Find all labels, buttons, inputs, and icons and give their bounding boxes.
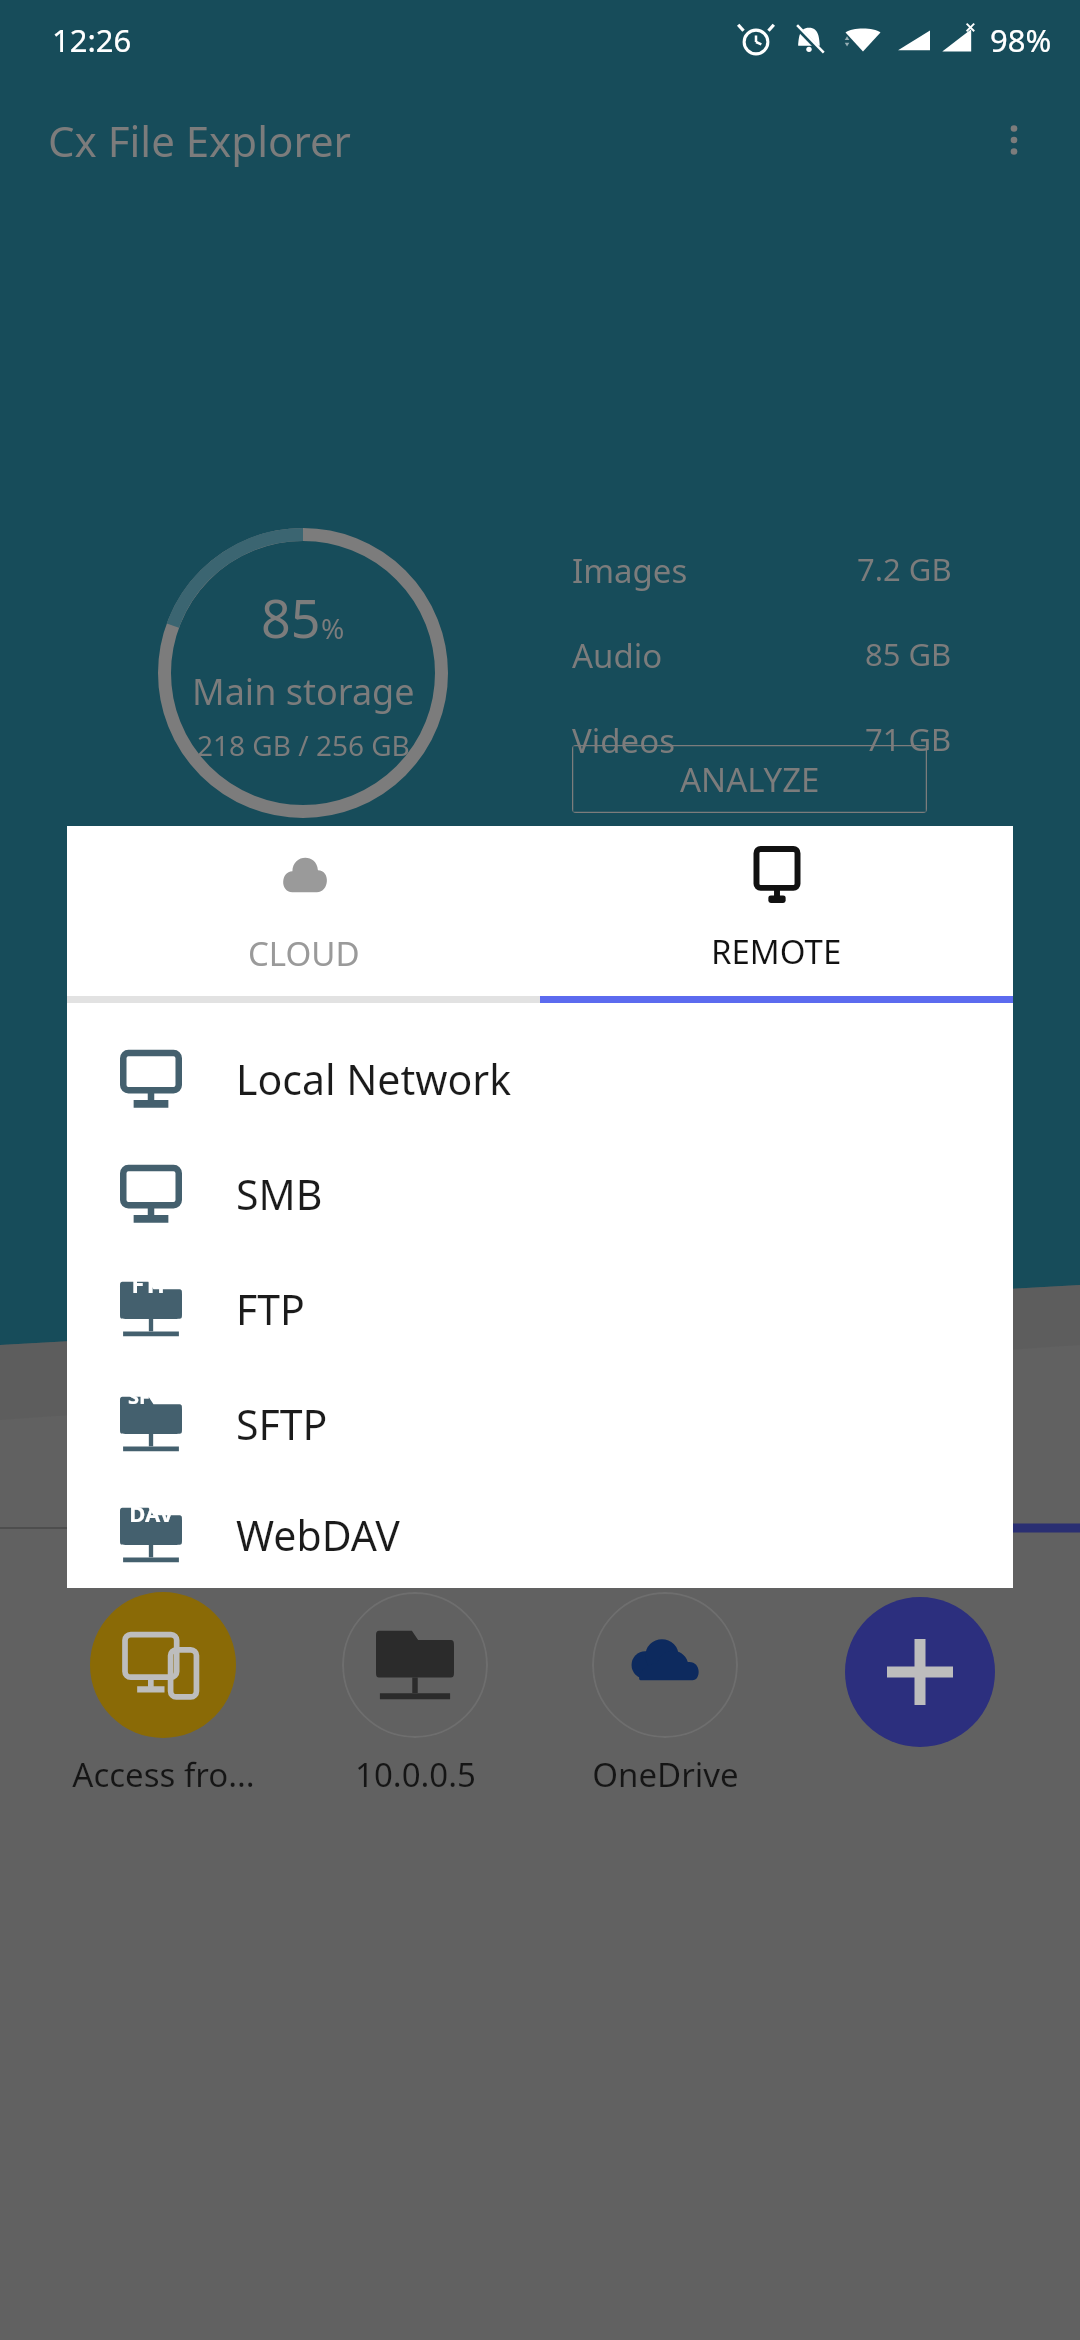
staticText: 10.0.0.5 — [355, 1752, 476, 1797]
staticText: Videos — [572, 718, 675, 763]
button[interactable]: SFTP — [67, 1366, 1013, 1481]
staticText: 85 — [261, 582, 321, 653]
button[interactable]: OneDrive — [560, 1592, 770, 1797]
staticText: Main storage — [192, 667, 415, 716]
staticText: ANALYZE — [680, 757, 820, 802]
button[interactable]: CLOUD — [67, 826, 540, 996]
staticText: % — [321, 609, 345, 647]
staticText: Images — [572, 548, 688, 593]
staticText: CLOUD — [248, 931, 360, 976]
staticText: SMB — [236, 1166, 323, 1222]
button[interactable]: More options — [972, 98, 1056, 182]
staticText: Audio — [572, 633, 663, 678]
staticText: 85 GB — [865, 633, 952, 675]
staticText: 218 GB / 256 GB — [197, 726, 410, 764]
staticText: 7.2 GB — [857, 548, 952, 590]
staticText: FTP — [236, 1281, 305, 1337]
button[interactable]: ANALYZE — [572, 745, 927, 813]
staticText: Local Network — [236, 1051, 512, 1107]
staticText: 71 GB — [865, 718, 952, 760]
button[interactable]: Add — [845, 1597, 995, 1747]
staticText: Cx File Explorer — [48, 112, 351, 169]
button[interactable]: FTP — [67, 1251, 1013, 1366]
staticText: 12:26 — [52, 19, 132, 61]
button[interactable]: SMB — [67, 1136, 1013, 1251]
button[interactable]: SFTP 10.0.0.5 — [310, 1592, 520, 1797]
staticText: WebDAV — [236, 1507, 400, 1563]
staticText: 98% — [990, 19, 1052, 61]
staticText: Access fro... — [72, 1752, 255, 1797]
staticText: FTP — [131, 1268, 172, 1299]
staticText: DAV — [129, 1498, 174, 1528]
staticText: OneDrive — [592, 1752, 739, 1797]
button[interactable]: Local Network — [67, 1021, 1013, 1136]
staticText: REMOTE — [711, 929, 842, 974]
button[interactable]: Access from PC — [58, 1592, 268, 1797]
button[interactable]: WebDAV — [67, 1481, 1013, 1588]
staticText: SFTP — [128, 1383, 174, 1410]
staticText: SFTP — [236, 1396, 328, 1452]
button[interactable]: REMOTE — [540, 826, 1013, 996]
